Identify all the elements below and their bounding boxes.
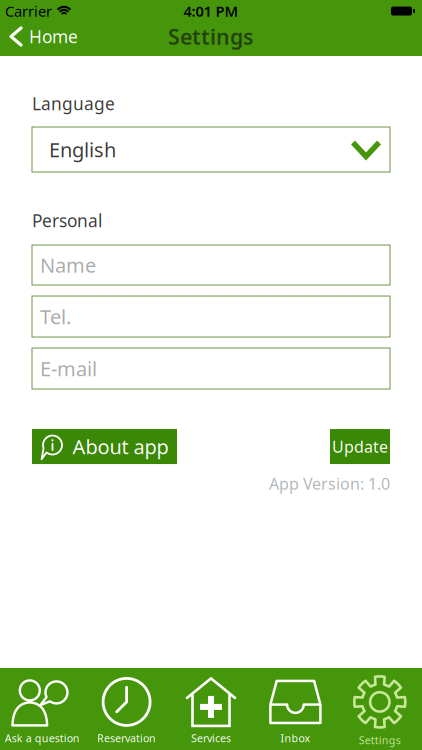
button[interactable]: Tel. text field <box>32 296 390 337</box>
button[interactable]: E-mail text field <box>32 348 390 389</box>
staticText: About app <box>72 433 168 460</box>
staticText: Inbox <box>280 731 310 745</box>
button[interactable]: Ask a question <box>0 668 84 750</box>
staticText: Update <box>332 436 388 457</box>
staticText: Name <box>40 252 96 278</box>
staticText: E-mail <box>40 355 97 382</box>
staticText: English <box>49 136 116 163</box>
button[interactable]: Reservation <box>84 668 169 750</box>
button[interactable]: Update <box>330 429 390 464</box>
staticText: App Version: 1.0 <box>269 473 390 494</box>
button[interactable]: English <box>32 127 390 172</box>
button[interactable]: Inbox <box>253 668 338 750</box>
button[interactable]: Settings <box>338 668 422 750</box>
staticText: 4:01 PM <box>183 1 238 21</box>
staticText: Reservation <box>97 731 156 745</box>
staticText: Settings <box>168 22 254 51</box>
button[interactable]: Name text field <box>32 245 390 285</box>
staticText: Services <box>191 731 231 745</box>
staticText: Ask a question <box>5 731 80 745</box>
staticText: Home <box>29 25 78 48</box>
staticText: Language <box>32 92 115 115</box>
staticText: Settings <box>359 733 401 747</box>
button[interactable]: Services <box>169 668 253 750</box>
staticText: Personal <box>32 209 102 232</box>
button[interactable]: About app <box>32 429 177 464</box>
staticText: Tel. <box>40 303 71 330</box>
staticText: Carrier <box>5 1 52 21</box>
button[interactable]: Home <box>11 25 78 48</box>
